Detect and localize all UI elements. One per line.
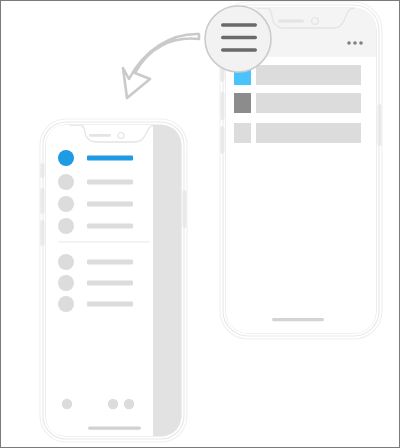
button[interactable]: Navigation drawer responsive layout diag…	[0, 0, 400, 448]
